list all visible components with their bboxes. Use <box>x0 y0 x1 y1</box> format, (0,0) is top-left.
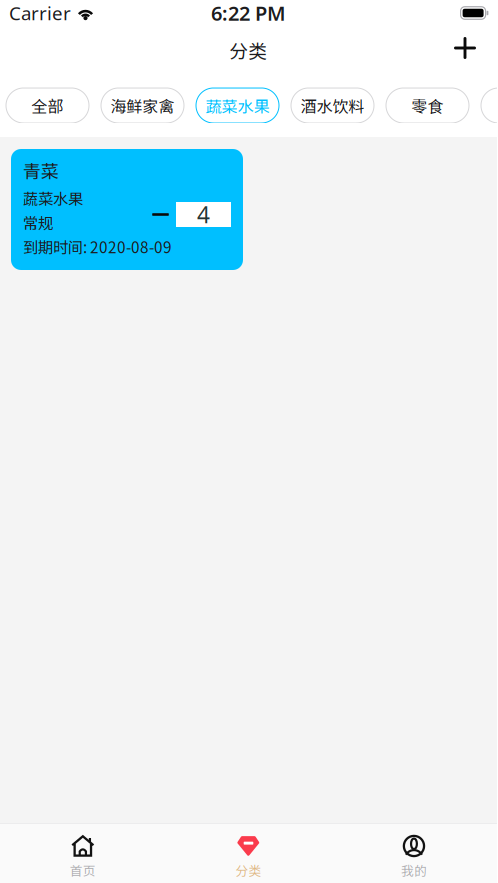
staticText: 首页 <box>70 861 96 879</box>
staticText: 蔬菜水果 <box>205 94 269 117</box>
button[interactable]: 首页 <box>0 824 166 883</box>
button[interactable]: 其他 <box>481 88 498 123</box>
button[interactable]: Decrease quantity <box>152 202 169 227</box>
button[interactable]: 零食 <box>386 88 469 123</box>
button[interactable]: 海鲜家禽 <box>101 88 184 123</box>
staticText: 全部 <box>31 94 63 117</box>
button[interactable]: 蔬菜水果 <box>196 88 279 123</box>
staticText: 青菜 <box>23 157 59 184</box>
button[interactable]: 我的 <box>331 824 497 883</box>
button[interactable]: 酒水饮料 <box>291 88 374 123</box>
staticText: Carrier <box>9 1 71 25</box>
staticText: 蔬菜水果 <box>23 187 83 209</box>
staticText: 4 <box>197 199 210 229</box>
button[interactable]: Add <box>443 27 487 69</box>
staticText: 6:22 PM <box>211 0 286 26</box>
staticText: 酒水饮料 <box>300 94 364 117</box>
button[interactable]: 全部 <box>6 88 89 123</box>
staticText: 分类 <box>235 861 261 879</box>
staticText: 到期时间: 2020-08-09 <box>23 235 172 258</box>
staticText: 分类 <box>229 36 267 63</box>
staticText: 常规 <box>23 211 53 233</box>
staticText: 零食 <box>411 94 443 117</box>
button[interactable]: 分类 <box>166 824 331 883</box>
staticText: 海鲜家禽 <box>110 94 174 117</box>
staticText: 我的 <box>401 861 427 879</box>
